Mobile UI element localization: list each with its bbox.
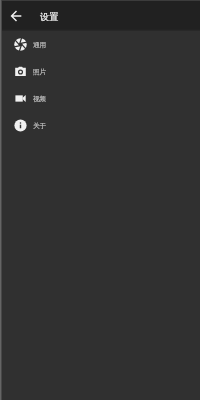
staticText: 通用 bbox=[33, 41, 47, 49]
staticText: 照片 bbox=[33, 68, 47, 76]
button[interactable]: 视频 bbox=[0, 85, 200, 112]
staticText: 关于 bbox=[33, 122, 47, 130]
button[interactable]: Back bbox=[3, 3, 29, 29]
staticText: 视频 bbox=[33, 95, 47, 103]
staticText: 设置 bbox=[40, 11, 59, 23]
button[interactable]: 关于 bbox=[0, 112, 200, 139]
button[interactable]: 通用 bbox=[0, 31, 200, 58]
button[interactable]: 照片 bbox=[0, 58, 200, 85]
